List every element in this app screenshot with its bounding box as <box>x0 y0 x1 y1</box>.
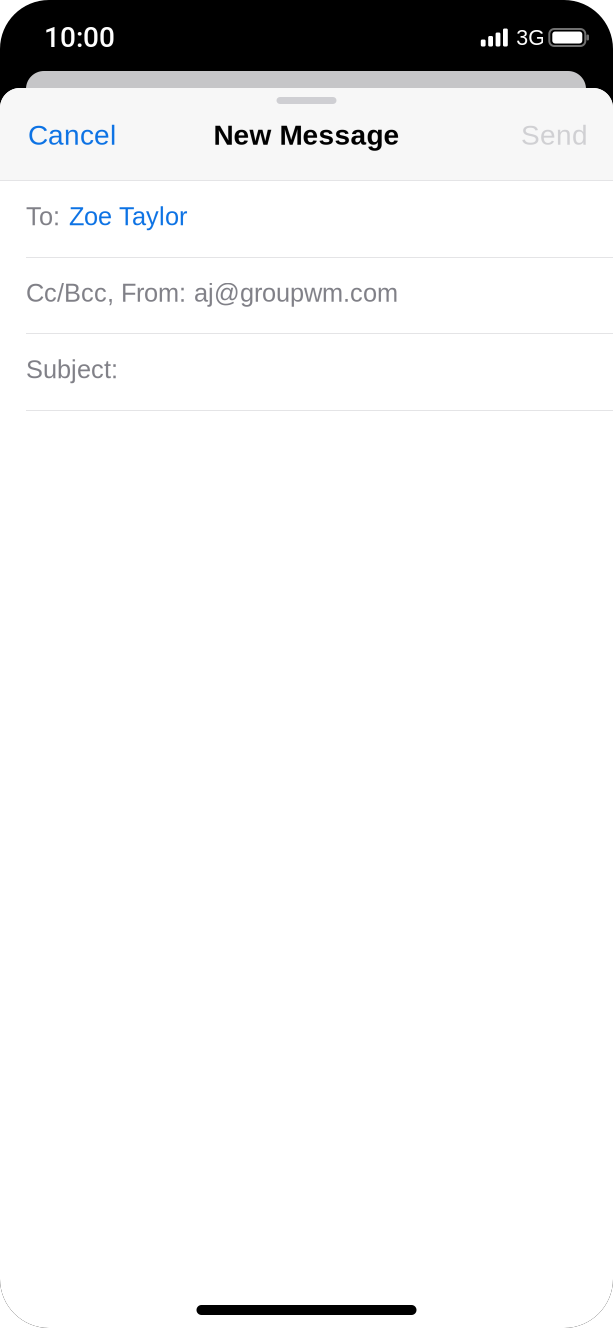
staticText: 10:00 <box>44 21 115 54</box>
staticText: New Message <box>213 119 399 151</box>
button[interactable]: Cc/Bcc, From: <box>0 258 613 333</box>
button[interactable]: Send <box>509 113 613 157</box>
button[interactable]: Subject: <box>0 334 613 410</box>
staticText: Send <box>521 119 588 151</box>
staticText: Subject: <box>26 355 118 384</box>
staticText: 3G <box>516 26 545 49</box>
button[interactable]: Cancel <box>0 113 128 157</box>
staticText: Cc/Bcc, From: <box>26 279 186 307</box>
staticText: Zoe Taylor <box>69 202 187 231</box>
staticText: aj@groupwm.com <box>194 279 398 307</box>
staticText: Cancel <box>28 119 116 151</box>
staticText: To: <box>26 202 60 231</box>
button[interactable]: To: <box>0 181 613 257</box>
